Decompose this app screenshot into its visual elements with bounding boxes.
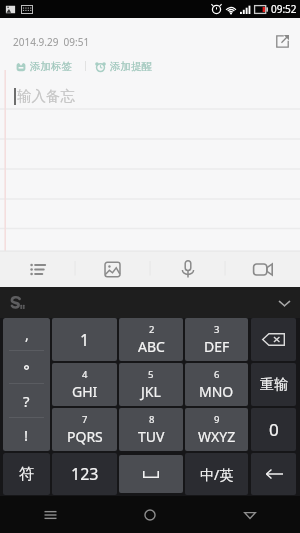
- button[interactable]: Space: [119, 455, 183, 493]
- button[interactable]: 5: [119, 363, 183, 406]
- staticText: PQRS: [67, 427, 103, 446]
- button[interactable]: Record video: [225, 251, 300, 287]
- button[interactable]: 重输: [251, 363, 296, 406]
- staticText: 输入备忘: [17, 87, 75, 105]
- button[interactable]: Hide keyboard: [270, 289, 298, 317]
- staticText: 09:52: [271, 2, 297, 16]
- staticText: 7: [82, 413, 88, 426]
- staticText: 1: [80, 329, 90, 351]
- button[interactable]: 1: [52, 318, 117, 361]
- button[interactable]: Back: [200, 496, 300, 533]
- button[interactable]: 添加标签: [15, 60, 73, 73]
- button[interactable]: 中/英: [185, 453, 248, 495]
- staticText: 4: [82, 368, 88, 381]
- staticText: 中/英: [200, 465, 234, 484]
- staticText: 符: [19, 465, 34, 484]
- staticText: 8: [149, 413, 155, 426]
- staticText: JKL: [141, 382, 161, 401]
- staticText: 2: [149, 323, 155, 336]
- staticText: 3: [214, 323, 220, 336]
- staticText: DEF: [204, 337, 230, 356]
- button[interactable]: 9: [185, 408, 248, 451]
- button[interactable]: Enter: [251, 453, 296, 495]
- staticText: !: [24, 425, 29, 445]
- button[interactable]: Punctuation: [3, 318, 50, 451]
- staticText: MNO: [199, 382, 234, 401]
- staticText: 添加提醒: [110, 60, 152, 73]
- staticText: ?: [23, 391, 30, 411]
- button[interactable]: Insert image: [75, 251, 150, 287]
- button[interactable]: Share: [269, 31, 295, 52]
- staticText: TUV: [138, 427, 165, 446]
- button[interactable]: 符: [3, 453, 50, 495]
- button[interactable]: Voice note: [150, 251, 225, 287]
- button[interactable]: 2: [119, 318, 183, 361]
- button[interactable]: 6: [185, 363, 248, 406]
- staticText: 2014.9.29 09:51: [13, 35, 90, 49]
- button[interactable]: Menu: [0, 496, 100, 533]
- staticText: 5: [148, 368, 154, 381]
- staticText: 6: [214, 368, 220, 381]
- staticText: 添加标签: [30, 60, 72, 73]
- button[interactable]: 添加提醒: [94, 60, 153, 73]
- staticText: WXYZ: [198, 427, 236, 446]
- button[interactable]: Home: [100, 496, 200, 533]
- staticText: 123: [71, 463, 99, 485]
- staticText: ,: [25, 325, 29, 344]
- staticText: 重输: [260, 376, 288, 394]
- button[interactable]: 0: [251, 408, 296, 451]
- button[interactable]: 8: [119, 408, 183, 451]
- button[interactable]: 123: [52, 453, 117, 495]
- button[interactable]: 7: [52, 408, 117, 451]
- staticText: 0: [269, 418, 279, 441]
- button[interactable]: Checklist: [0, 251, 75, 287]
- button[interactable]: 3: [185, 318, 248, 361]
- button[interactable]: 4: [52, 363, 117, 406]
- staticText: ABC: [138, 337, 165, 356]
- button[interactable]: Backspace: [251, 318, 296, 361]
- staticText: 9: [214, 413, 220, 426]
- staticText: GHI: [72, 382, 98, 401]
